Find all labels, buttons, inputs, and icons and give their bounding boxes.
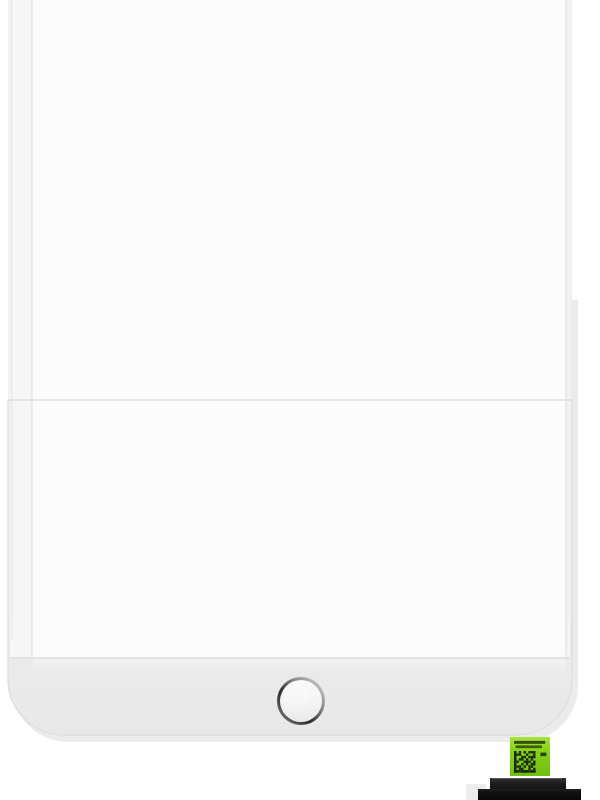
- button[interactable]: iPad touch screen digitizer replacement …: [0, 0, 600, 800]
